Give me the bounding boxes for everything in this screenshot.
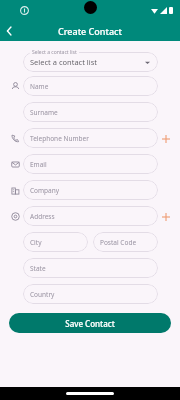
button[interactable]: City xyxy=(23,232,88,252)
staticText: City xyxy=(30,238,42,247)
button[interactable]: Add Address xyxy=(158,209,173,224)
staticText: Save Contact xyxy=(65,318,115,329)
staticText: Create Contact xyxy=(58,25,122,37)
button[interactable]: Telephone Number xyxy=(23,128,158,148)
button[interactable]: Country xyxy=(23,284,158,304)
staticText: Select a contact list xyxy=(32,49,77,56)
button[interactable]: Add Telephone Number xyxy=(158,131,173,146)
button[interactable]: State xyxy=(23,258,158,278)
staticText: Select a contact list xyxy=(30,57,98,67)
staticText: Name xyxy=(30,82,49,91)
button[interactable]: Company xyxy=(23,180,158,200)
button[interactable]: Back xyxy=(0,21,20,41)
staticText: Surname xyxy=(30,108,58,117)
button[interactable]: Name xyxy=(23,76,158,96)
staticText: Telephone Number xyxy=(30,134,89,143)
staticText: State xyxy=(30,264,46,273)
button[interactable]: Address xyxy=(23,206,158,226)
button[interactable]: Surname xyxy=(23,102,158,122)
button[interactable]: Save Contact xyxy=(9,313,171,333)
staticText: Postal Code xyxy=(100,238,137,247)
staticText: Company xyxy=(30,186,60,195)
button[interactable]: Email xyxy=(23,154,158,174)
button[interactable]: Select a contact list xyxy=(23,52,158,72)
staticText: Email xyxy=(30,160,47,169)
staticText: Address xyxy=(30,212,55,221)
button[interactable]: Postal Code xyxy=(93,232,158,252)
staticText: Country xyxy=(30,290,55,299)
